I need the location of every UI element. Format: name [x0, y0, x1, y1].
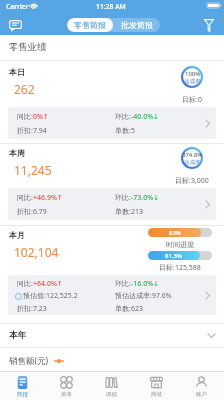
staticText: 83%: [169, 229, 181, 237]
button[interactable]: 菜单: [44, 372, 89, 400]
staticText: 目标:3,000: [175, 176, 209, 186]
staticText: 目标:125,588: [159, 263, 201, 273]
staticText: 简报: [17, 391, 28, 398]
staticText: 零售业绩: [9, 41, 47, 53]
staticText: 同比:: [17, 279, 33, 289]
button[interactable]: Messages: [7, 17, 23, 33]
staticText: 262: [14, 81, 35, 97]
staticText: -73.0%↓: [131, 193, 159, 203]
staticText: 折扣:7.23: [17, 304, 47, 314]
staticText: 374.8%: [182, 151, 203, 159]
staticText: 100%: [185, 70, 201, 78]
button[interactable]: 账户: [179, 372, 224, 400]
staticText: 折扣:7.94: [17, 126, 47, 136]
staticText: 批发简报: [121, 20, 153, 30]
button[interactable]: 本月: [0, 226, 224, 319]
button[interactable]: 本周: [0, 144, 224, 224]
staticText: 11,245: [14, 162, 52, 178]
staticText: 环比:: [115, 279, 131, 289]
staticText: 时间进度: [166, 240, 194, 249]
button[interactable]: 批发简报: [113, 18, 160, 32]
staticText: 0%↑: [33, 112, 49, 122]
button[interactable]: 商城: [134, 372, 179, 400]
staticText: 达成率: [184, 159, 201, 166]
staticText: 销售额(元): [9, 355, 49, 367]
staticText: 商城: [151, 391, 162, 398]
staticText: 零售简报: [74, 20, 106, 30]
staticText: 本周: [9, 148, 25, 158]
staticText: 预估达成率:97.6%: [115, 291, 172, 301]
staticText: 目标:0: [182, 95, 202, 105]
staticText: 102,104: [14, 244, 59, 260]
staticText: Carrier: [6, 2, 29, 11]
staticText: 环比:: [115, 193, 131, 203]
button[interactable]: 本年: [0, 324, 224, 347]
staticText: 同比:: [17, 193, 33, 203]
staticText: 单数:5: [115, 126, 135, 136]
staticText: 81.3%: [165, 252, 183, 260]
button[interactable]: 零售简报: [67, 18, 113, 32]
staticText: 达成率: [184, 78, 201, 85]
staticText: 11:28 AM: [96, 2, 126, 11]
staticText: 折扣:6.79: [17, 207, 47, 217]
button[interactable]: 简报: [0, 372, 44, 400]
staticText: +64.0%↑: [33, 279, 63, 289]
staticText: 预估值:122,525.2: [23, 291, 78, 301]
staticText: -40.0%↓: [131, 112, 159, 122]
staticText: 菜单: [61, 391, 72, 398]
staticText: 课程: [106, 391, 117, 398]
button[interactable]: 本日: [0, 63, 224, 143]
staticText: 本年: [9, 330, 27, 341]
staticText: 本月: [9, 230, 25, 240]
staticText: 账户: [196, 391, 207, 398]
button[interactable]: Filter: [201, 17, 217, 33]
staticText: 同比:: [17, 112, 33, 122]
staticText: 单数:623: [115, 304, 143, 314]
staticText: -16.0%↓: [131, 279, 159, 289]
staticText: 本日: [9, 67, 25, 77]
staticText: 单数:213: [115, 207, 143, 217]
staticText: +46.9%↑: [33, 193, 63, 203]
staticText: 环比:: [115, 112, 131, 122]
button[interactable]: 课程: [89, 372, 134, 400]
